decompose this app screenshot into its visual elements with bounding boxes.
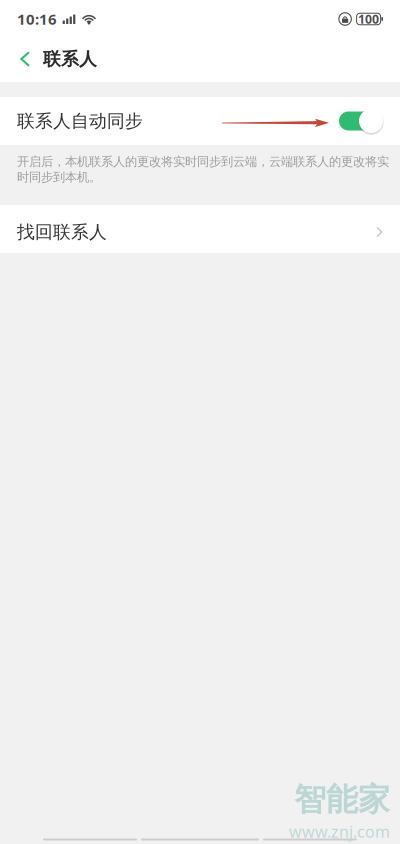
staticText: 开启后，本机联系人的更改将实时同步到云端，云端联系人的更改将实时同步到本机。 [17, 154, 389, 185]
staticText: 100 [358, 11, 379, 27]
staticText: 联系人自动同步 [17, 110, 143, 132]
button[interactable]: 返回 [12, 39, 38, 79]
staticText: www.znj.com [289, 821, 390, 843]
button[interactable]: 找回联系人 [0, 205, 400, 253]
button[interactable]: 联系人自动同步 [0, 97, 400, 145]
staticText: 智能家 [294, 779, 390, 820]
staticText: 10:16 [17, 9, 57, 29]
staticText: 联系人 [43, 48, 97, 70]
staticText: 找回联系人 [17, 221, 107, 243]
